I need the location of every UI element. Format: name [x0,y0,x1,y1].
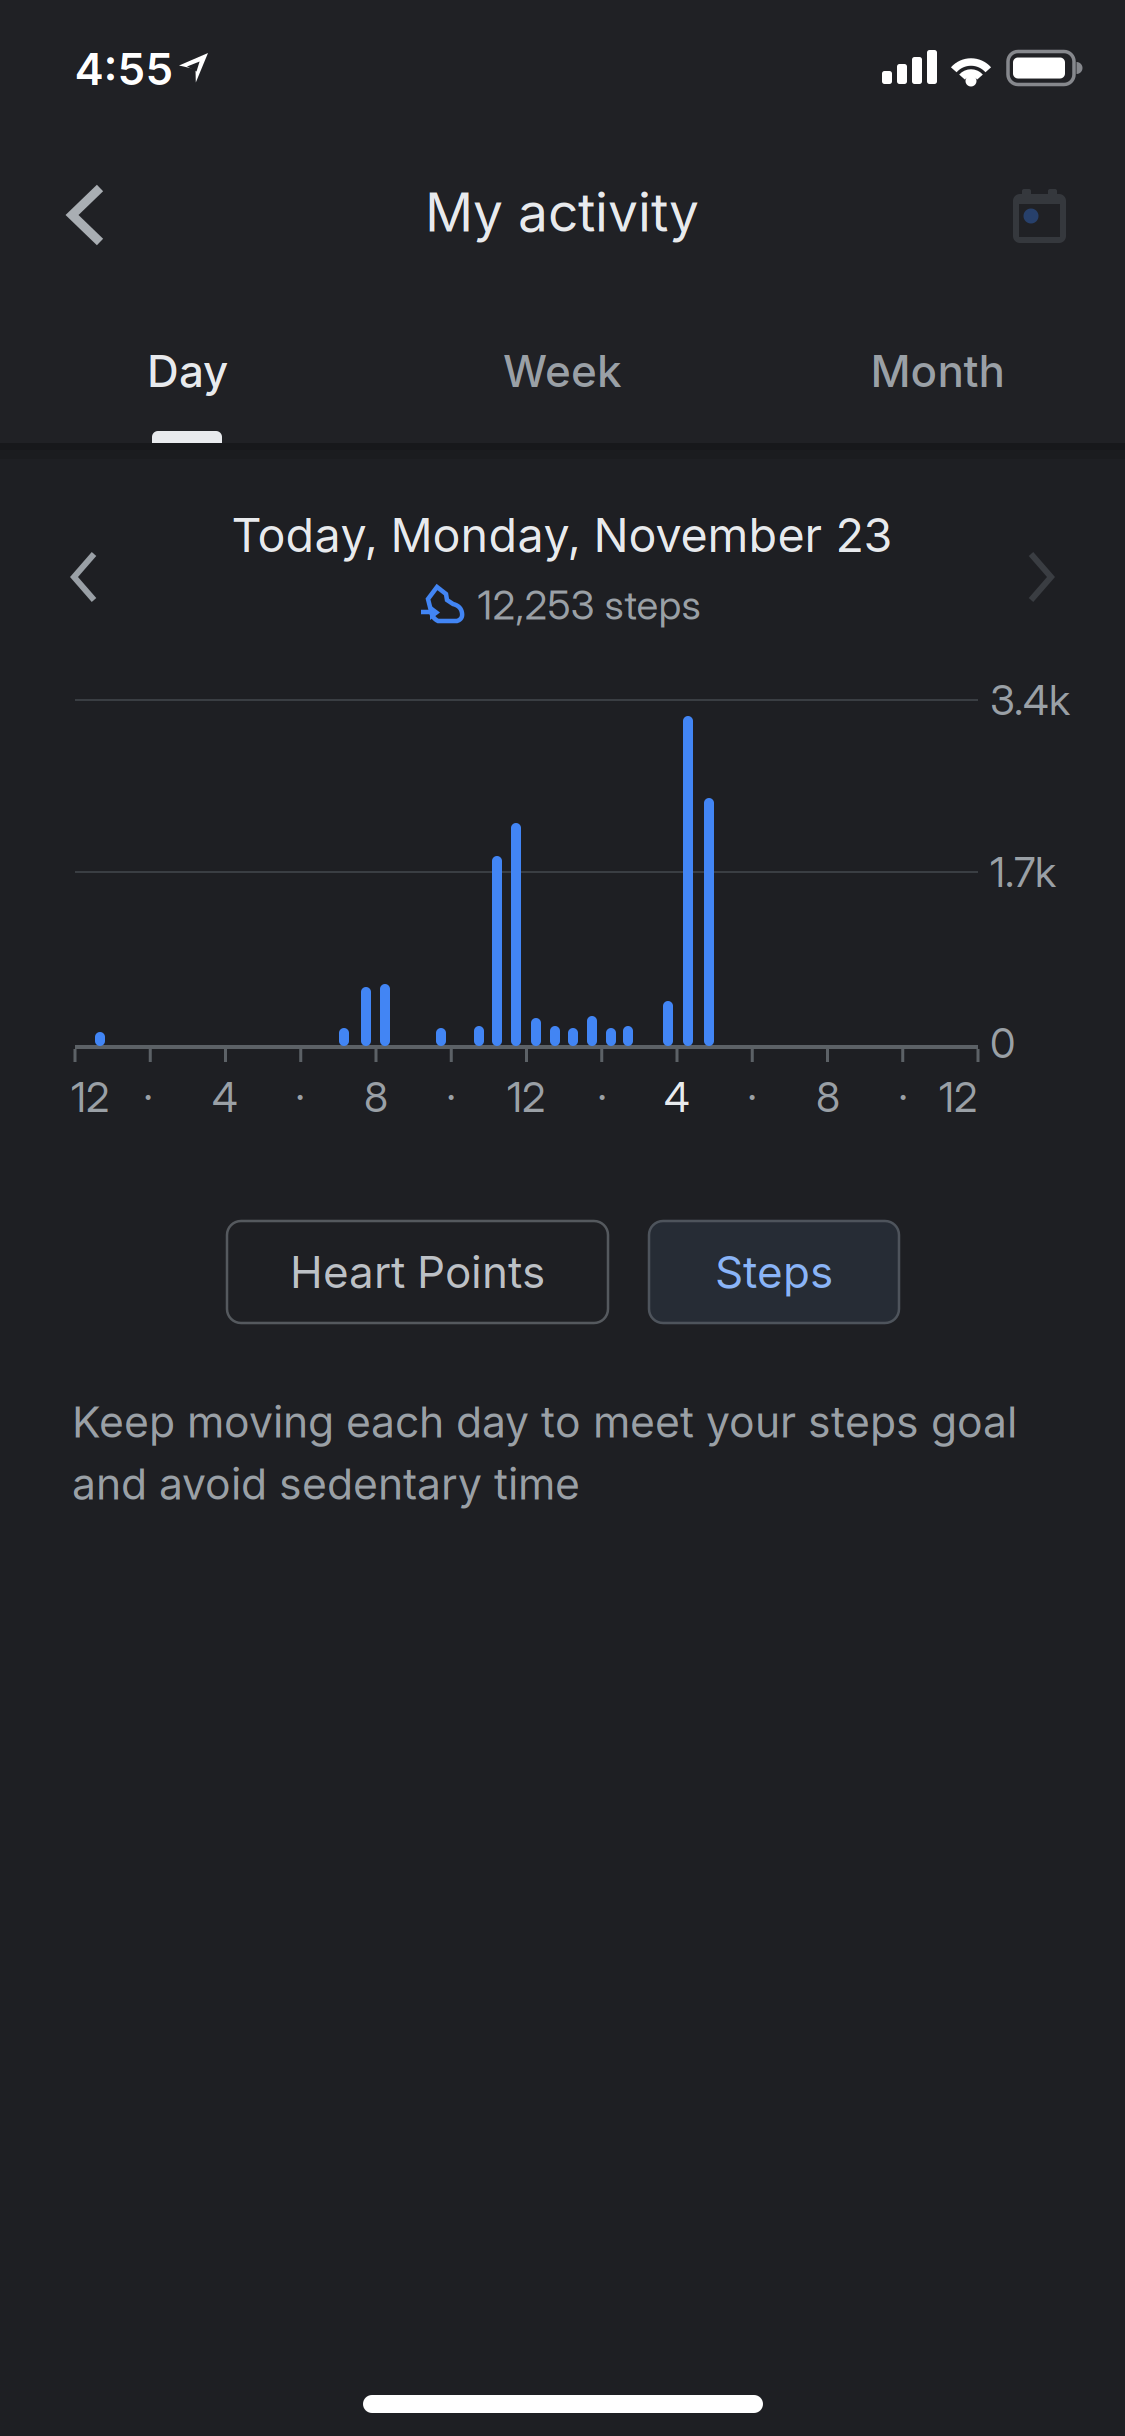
staticText: · [597,1073,606,1121]
staticText: · [898,1073,907,1121]
staticText: Steps [715,1246,833,1298]
staticText: 3.4k [990,676,1070,724]
staticText: · [446,1073,455,1121]
staticText: Keep moving each day to meet your steps … [72,1397,1017,1447]
button[interactable]: Heart Points [227,1221,608,1323]
staticText: 4:55 [74,43,173,95]
staticText: 12 [939,1073,977,1121]
button[interactable]: Next day [986,522,1096,632]
staticText: Day [147,345,228,397]
button[interactable]: Day [0,323,375,419]
staticText: Month [870,345,1004,397]
button[interactable]: Month [750,323,1125,419]
staticText: Today, Monday, November 23 [231,507,892,563]
button[interactable]: Steps [649,1221,899,1323]
staticText: and avoid sedentary time [72,1459,580,1509]
staticText: 1.7k [990,848,1056,896]
staticText: 12,253 steps [477,581,700,629]
staticText: · [143,1073,152,1121]
button[interactable]: Choose date [990,166,1090,266]
button[interactable]: Previous day [29,522,139,632]
staticText: Week [503,345,622,397]
staticText: 8 [816,1073,840,1121]
staticText: Heart Points [290,1246,545,1298]
staticText: 12 [71,1073,109,1121]
staticText: 4 [212,1073,238,1121]
button[interactable]: Week [375,323,750,419]
staticText: · [747,1073,756,1121]
staticText: My activity [425,180,699,243]
staticText: 8 [364,1073,388,1121]
staticText: · [295,1073,304,1121]
staticText: 0 [990,1019,1015,1067]
staticText: 4 [664,1073,690,1121]
staticText: 12 [507,1073,545,1121]
button[interactable]: Back [26,155,146,275]
